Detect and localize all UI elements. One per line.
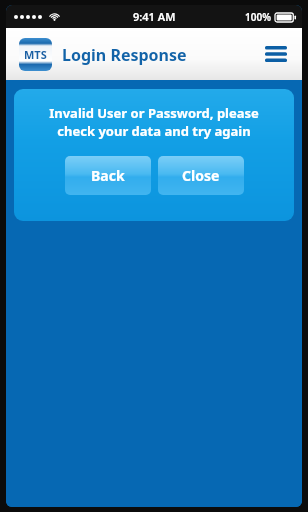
staticText: 9:41 AM — [133, 9, 176, 24]
staticText: Login Response — [62, 44, 187, 66]
staticText: Back — [91, 166, 125, 185]
staticText: 100% — [245, 10, 271, 24]
staticText: Invalid User or Password, please check y… — [49, 104, 259, 140]
staticText: MTS — [24, 47, 47, 62]
staticText: Close — [182, 166, 220, 185]
button[interactable]: Back — [65, 156, 151, 195]
button[interactable]: Close — [158, 156, 244, 195]
button[interactable]: Menu — [260, 38, 292, 70]
